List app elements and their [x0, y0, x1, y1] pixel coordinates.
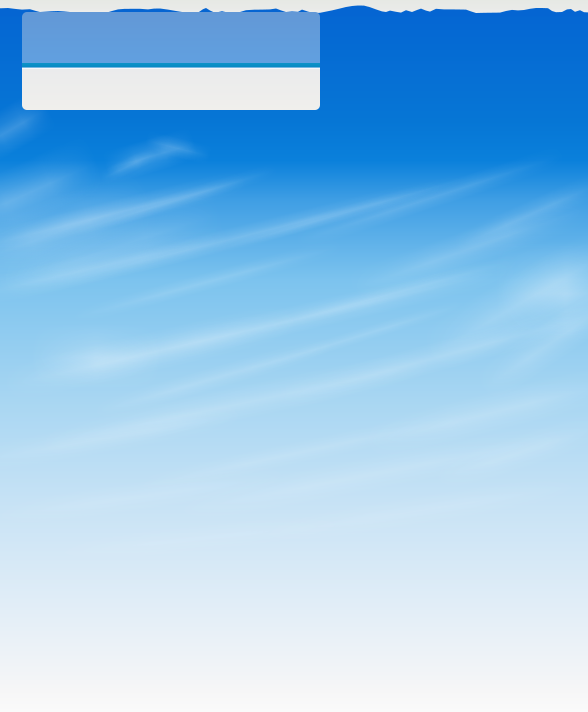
button[interactable]	[22, 12, 320, 110]
